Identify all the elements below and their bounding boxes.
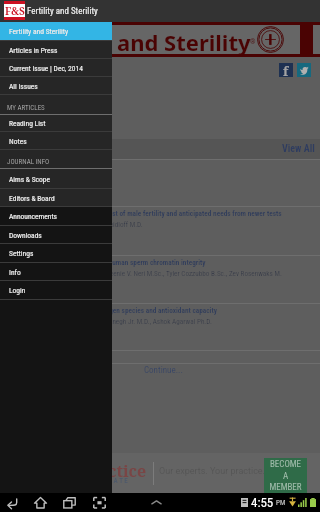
button[interactable]: Twitter xyxy=(297,63,311,77)
button[interactable]: Screenshot xyxy=(90,493,109,512)
staticText: All Issues xyxy=(9,82,38,91)
button[interactable]: Recent apps xyxy=(60,493,79,512)
button[interactable]: Login xyxy=(0,281,112,300)
staticText: Peter N. Schlegel M.D. xyxy=(8,172,72,180)
button[interactable]: All Issues xyxy=(0,77,112,95)
button[interactable]: Articles in Press xyxy=(0,41,112,59)
staticText: Relation between reactive oxygen species… xyxy=(22,306,217,315)
staticText: Aims & Scope xyxy=(9,175,50,184)
staticText: Queenie V. Neri M.Sc., Tyler Cozzubbo B.… xyxy=(102,269,282,277)
staticText: Settings xyxy=(9,249,34,258)
button[interactable]: Predictive value of the standard test of… xyxy=(0,207,320,256)
button[interactable]: Show keyboard xyxy=(147,493,165,512)
button[interactable]: Editors & Board xyxy=(0,189,112,207)
staticText: and Sterility xyxy=(117,27,251,57)
staticText: Reading List xyxy=(9,119,46,128)
button[interactable]: Sperm retrieval rates xyxy=(0,159,320,207)
button[interactable]: Reading List xyxy=(0,115,112,132)
staticText: Rakesh Sharma Ph.D., Edmund Sabanegh Jr.… xyxy=(10,317,212,325)
staticText: Articles in Press xyxy=(9,46,58,55)
staticText: Downloads xyxy=(9,231,42,240)
button[interactable]: View All xyxy=(277,143,320,155)
button[interactable]: Fertility and Sterility xyxy=(0,22,112,41)
staticText: F&S xyxy=(5,4,25,18)
staticText: Current Issue | Dec, 2014 xyxy=(9,64,83,73)
staticText: Info xyxy=(9,268,21,277)
button[interactable]: BECOME A MEMBER xyxy=(264,458,307,493)
staticText: MY ARTICLES xyxy=(7,104,45,112)
button[interactable]: Home xyxy=(31,493,50,512)
button[interactable]: Downloads xyxy=(0,226,112,244)
button[interactable]: Settings xyxy=(0,244,112,263)
button[interactable]: Info xyxy=(0,263,112,281)
button[interactable]: F&S xyxy=(4,1,25,20)
staticText: PM xyxy=(276,499,286,507)
button[interactable]: Facebook xyxy=(279,63,293,77)
staticText: JOURNAL INFO xyxy=(7,158,50,166)
staticText: f xyxy=(283,62,289,76)
button[interactable]: Current Issue | Dec, 2014 xyxy=(0,59,112,77)
button[interactable]: Notes xyxy=(0,132,112,150)
staticText: BECOME A MEMBER xyxy=(269,459,302,492)
button[interactable]: Continue... xyxy=(140,365,187,376)
button[interactable]: ctice xyxy=(0,453,320,493)
staticText: View All xyxy=(282,143,315,155)
button[interactable]: Relation between reactive oxygen species… xyxy=(0,304,320,351)
staticText: Sperm retrieval rates xyxy=(8,161,70,170)
button[interactable]: Aims & Scope xyxy=(0,169,112,189)
staticText: Announcements xyxy=(9,212,58,221)
staticText: Predictive value of the standard test of… xyxy=(12,209,282,218)
staticText: Editors & Board xyxy=(9,194,55,203)
button[interactable]: Announcements xyxy=(0,207,112,226)
staticText: Login xyxy=(9,286,26,295)
staticText: D A T E xyxy=(108,477,128,485)
staticText: Evaluation of human sperm chromatin inte… xyxy=(69,258,206,267)
staticText: Our experts. Your practice. xyxy=(159,466,265,477)
staticText: Fertility and Sterility xyxy=(9,27,69,36)
staticText: Continue... xyxy=(144,365,183,376)
staticText: ctice xyxy=(108,460,147,482)
staticText: 4:55 xyxy=(251,495,274,510)
staticText: Fertility and Sterility xyxy=(27,6,98,17)
staticText: Notes xyxy=(9,137,27,146)
staticText: Moshe Wald M.D., Peter N. Scheidloff M.D… xyxy=(22,220,143,228)
staticText: ® xyxy=(250,38,256,46)
button[interactable]: Back xyxy=(2,493,21,512)
button[interactable]: Evaluation of human sperm chromatin inte… xyxy=(0,256,320,304)
